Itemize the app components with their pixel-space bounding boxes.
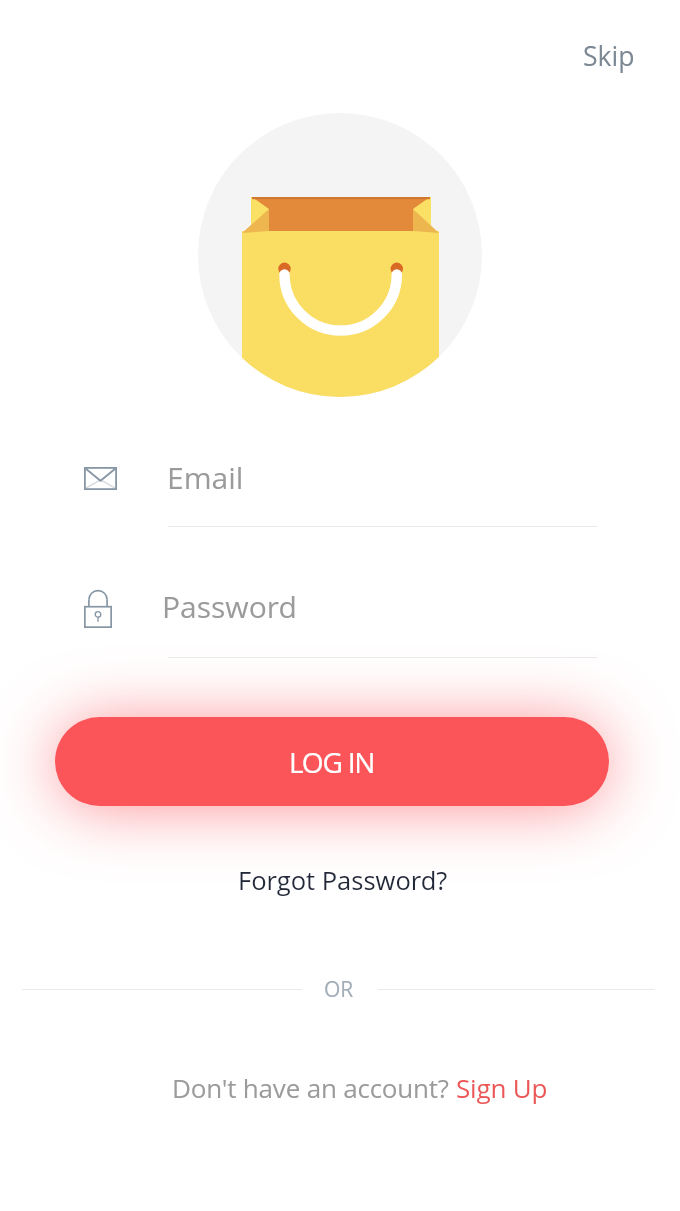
staticText: Forgot Password? [238,863,448,898]
button[interactable]: Sign Up [456,1070,548,1105]
other: Email [84,467,117,490]
button[interactable]: Skip [567,26,651,86]
button[interactable]: Email [78,452,603,532]
staticText: Skip [583,38,635,74]
staticText: Password [162,586,297,627]
button[interactable]: Forgot Password? [230,857,456,904]
button[interactable]: Password [78,581,603,661]
staticText: Email [167,457,244,498]
button[interactable]: LOG IN [55,717,609,806]
staticText: Sign Up [456,1070,548,1105]
staticText: Don't have an account? [172,1070,456,1105]
other: Password [84,590,112,628]
staticText: OR [324,975,354,1004]
staticText: LOG IN [289,743,375,781]
